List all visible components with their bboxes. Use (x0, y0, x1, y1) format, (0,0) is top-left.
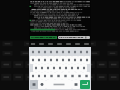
button[interactable]: Text input (58, 36, 90, 39)
button[interactable]: Key 5 (55, 72, 62, 80)
button[interactable]: Status line (30, 36, 57, 39)
button[interactable]: Key 10 (84, 56, 90, 64)
button[interactable]: Key 1 (30, 72, 36, 80)
button[interactable]: Key 7 (66, 48, 72, 56)
button[interactable]: Enter (80, 80, 90, 89)
button[interactable]: Key 3 (42, 72, 48, 80)
button[interactable]: Key 1 (30, 48, 36, 56)
button[interactable]: Key 7 (69, 72, 76, 80)
button[interactable]: HOME (55, 41, 64, 47)
button[interactable]: Key 9 (78, 56, 84, 64)
button[interactable]: Terminal output (29, 0, 91, 34)
button[interactable]: Key 4 (48, 56, 54, 64)
button[interactable]: Key 8 (72, 56, 78, 64)
button[interactable]: Key 1 (30, 56, 36, 64)
button[interactable]: Key 3 (42, 48, 48, 56)
button[interactable]: PGUP (82, 41, 91, 47)
button[interactable]: Key 4 (48, 48, 54, 56)
button[interactable]: Key 6 (63, 64, 69, 72)
button[interactable]: Symbols (30, 80, 38, 89)
button[interactable]: Key 9 (81, 64, 87, 72)
button[interactable]: Key 2 (36, 72, 42, 80)
button[interactable]: ESC (29, 41, 37, 47)
button[interactable]: Key 2 (36, 48, 42, 56)
button[interactable]: Key 8 (72, 48, 78, 56)
button[interactable]: Key 6 (60, 56, 66, 64)
button[interactable]: Key 4 (48, 72, 55, 80)
button[interactable]: Key 5 (57, 64, 63, 72)
button[interactable]: Key 5 (54, 48, 60, 56)
button[interactable]: ↑ (64, 41, 73, 47)
button[interactable]: - (46, 41, 55, 47)
button[interactable]: Key 2 (39, 64, 45, 72)
button[interactable]: Key 10 (84, 48, 90, 56)
button[interactable]: / (37, 41, 46, 47)
button[interactable]: Key 7 (66, 56, 72, 64)
button[interactable]: Emoji (38, 80, 46, 89)
button[interactable]: Key 1 (33, 64, 39, 72)
button[interactable]: Space (46, 80, 72, 89)
button[interactable]: Key 9 (78, 48, 84, 56)
button[interactable]: Key 6 (60, 48, 66, 56)
button[interactable]: Key 4 (51, 64, 57, 72)
button[interactable]: Key 9 (83, 72, 90, 80)
button[interactable]: Key 2 (36, 56, 42, 64)
button[interactable]: Period (72, 80, 80, 89)
button[interactable]: Key 7 (69, 64, 75, 72)
button[interactable]: Key 8 (75, 64, 81, 72)
button[interactable]: Key 8 (76, 72, 83, 80)
button[interactable]: Key 3 (42, 56, 48, 64)
button[interactable]: Key 5 (54, 56, 60, 64)
button[interactable]: Key 3 (45, 64, 51, 72)
button[interactable]: END (73, 41, 82, 47)
button[interactable]: Key 6 (62, 72, 69, 80)
